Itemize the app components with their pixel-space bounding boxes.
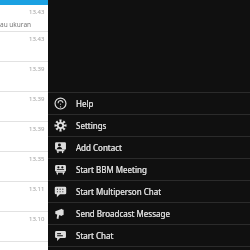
button[interactable]: Start Chat bbox=[48, 225, 250, 246]
button[interactable]: Start BBM Meeting bbox=[48, 159, 250, 180]
staticText: Start Multiperson Chat bbox=[76, 186, 162, 197]
staticText: au ukuran Pa… bbox=[0, 20, 45, 29]
staticText: 13.11 bbox=[29, 185, 45, 193]
staticText: Add Contact bbox=[76, 142, 122, 153]
staticText: Settings bbox=[76, 120, 107, 131]
staticText: Start BBM Meeting bbox=[76, 164, 147, 175]
button[interactable]: Start Multiperson Chat bbox=[48, 181, 250, 202]
staticText: 13.35 bbox=[29, 155, 45, 163]
staticText: Help bbox=[76, 98, 94, 109]
button[interactable]: Send Broadcast Message bbox=[48, 203, 250, 224]
staticText: 13.39 bbox=[29, 95, 45, 103]
staticText: 13.39 bbox=[29, 125, 45, 133]
staticText: 13.10 bbox=[29, 215, 45, 223]
button[interactable]: Help bbox=[48, 93, 250, 114]
staticText: Start Chat bbox=[76, 230, 114, 241]
button[interactable]: Settings bbox=[48, 115, 250, 136]
staticText: 13.43 bbox=[29, 8, 45, 16]
staticText: Send Broadcast Message bbox=[76, 208, 170, 219]
staticText: 13.43 bbox=[29, 35, 45, 43]
button[interactable]: Add Contact bbox=[48, 137, 250, 158]
staticText: 13.39 bbox=[29, 65, 45, 73]
